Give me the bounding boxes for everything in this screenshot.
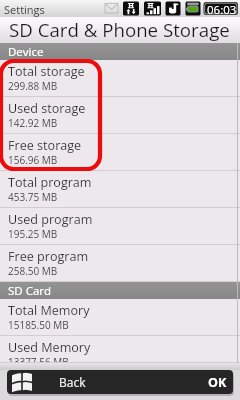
button[interactable]: Total storage (0, 60, 240, 97)
button[interactable]: Used Memory (0, 336, 240, 363)
button[interactable]: Used storage (0, 97, 240, 134)
staticText: OK (208, 374, 227, 391)
staticText: 13377.56 MB (8, 355, 69, 363)
staticText: Used storage (8, 100, 86, 117)
button[interactable]: Back (40, 370, 180, 394)
staticText: 258.50 MB (8, 264, 58, 278)
staticText: 06:03 (207, 2, 237, 18)
button[interactable]: Used program (0, 208, 240, 245)
staticText: Total storage (8, 63, 85, 80)
staticText: Free storage (8, 137, 82, 154)
staticText: Used Memory (8, 339, 91, 356)
staticText: Settings (4, 2, 45, 17)
staticText: 142.92 MB (8, 116, 58, 130)
staticText: 15185.50 MB (8, 318, 69, 332)
staticText: 299.88 MB (8, 79, 58, 93)
staticText: SD Card (8, 283, 52, 299)
staticText: Device (8, 44, 44, 60)
button[interactable]: Start (7, 370, 40, 394)
staticText: 453.75 MB (8, 190, 58, 204)
staticText: 156.96 MB (8, 153, 58, 167)
staticText: 195.25 MB (8, 227, 58, 241)
staticText: Total Memory (8, 302, 90, 319)
button[interactable]: Free program (0, 245, 240, 282)
staticText: SD Card & Phone Storage (9, 17, 230, 42)
staticText: Total program (8, 174, 92, 191)
button[interactable]: Free storage (0, 134, 240, 171)
staticText: Free program (8, 248, 89, 265)
button[interactable]: OK (180, 370, 233, 394)
button[interactable]: Total Memory (0, 299, 240, 336)
staticText: Used program (8, 211, 93, 228)
button[interactable]: Total program (0, 171, 240, 208)
staticText: Back (59, 374, 86, 390)
